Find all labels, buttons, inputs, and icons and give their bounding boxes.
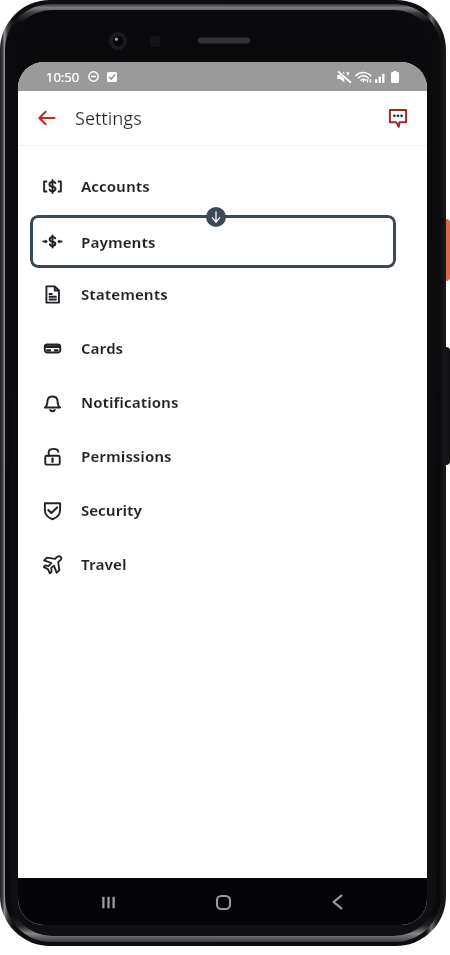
button[interactable]: Recents [85,879,131,925]
button[interactable]: Home [200,879,246,925]
button[interactable]: Cards [18,321,427,375]
staticText: Settings [75,106,142,131]
button[interactable]: Travel [18,537,427,591]
staticText: Payments [81,232,156,252]
staticText: 10:50 [46,68,80,86]
button[interactable]: Permissions [18,429,427,483]
button[interactable]: Scroll down [206,207,226,227]
staticText: Notifications [81,392,179,412]
staticText: Statements [81,284,168,304]
button[interactable]: Back [314,879,360,925]
staticText: Travel [81,554,127,574]
button[interactable]: Security [18,483,427,537]
button[interactable]: Messages [384,104,412,132]
staticText: Permissions [81,446,172,466]
button[interactable]: Payments [30,215,396,268]
button[interactable]: Back [32,104,60,132]
staticText: Accounts [81,176,150,196]
button[interactable]: Notifications [18,375,427,429]
staticText: Security [81,500,143,520]
staticText: Cards [81,338,124,358]
button[interactable]: Statements [18,267,427,321]
button[interactable]: Accounts [18,159,427,213]
